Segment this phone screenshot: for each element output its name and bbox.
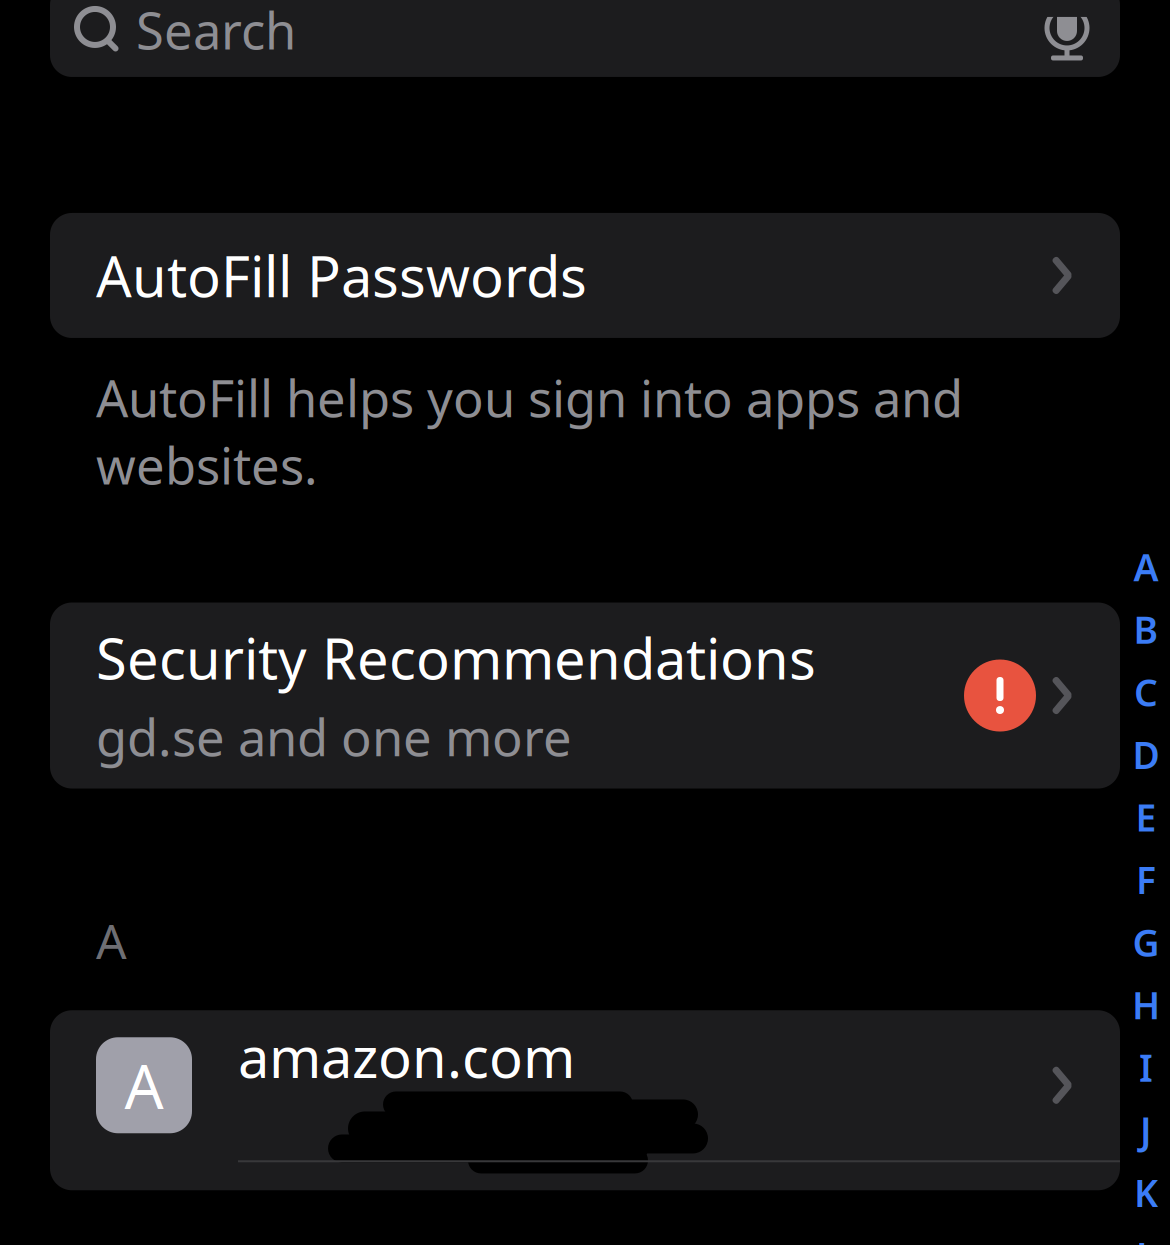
button[interactable]: Search [50,0,1120,77]
staticText: A [96,908,127,972]
staticText: A [1133,542,1158,592]
staticText: robert [363,1089,513,1156]
staticText: AutoFill helps you sign into apps and we… [96,364,963,499]
staticText: E [1135,792,1156,842]
staticText: L [1136,1230,1156,1245]
button[interactable]: A [50,1010,1120,1190]
staticText: B [1133,604,1158,654]
staticText: amazon.com [238,1019,575,1093]
staticText: Security Recommendations [96,621,816,695]
button[interactable]: Security Recommendations [50,602,1120,788]
staticText: I [1139,1043,1153,1092]
staticText: F [1136,855,1156,904]
staticText: H [1132,980,1160,1030]
staticText: gd.se and one more [96,703,572,770]
staticText: A [124,1044,163,1126]
staticText: C [1134,667,1158,717]
staticText: D [1132,730,1159,779]
staticText: Search [136,0,296,64]
staticText: AutoFill Passwords [96,238,587,313]
button[interactable]: AutoFill Passwords [50,213,1120,338]
staticText: J [1140,1105,1152,1155]
staticText: G [1132,917,1159,967]
staticText: K [1134,1168,1158,1217]
